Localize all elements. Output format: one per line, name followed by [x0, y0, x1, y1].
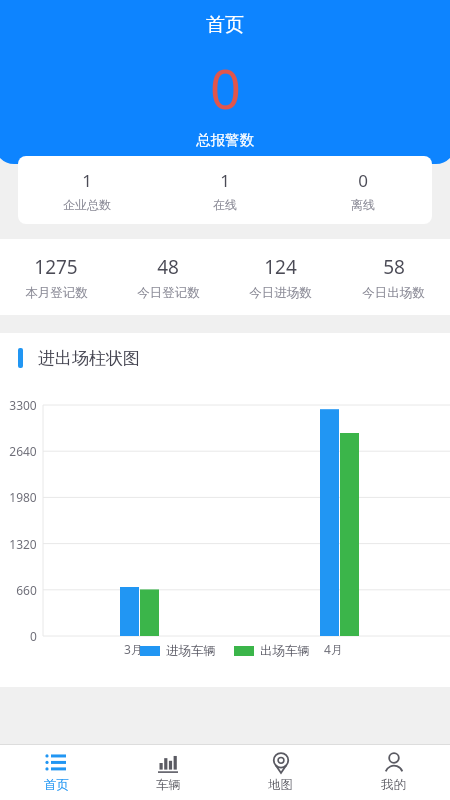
staticText: 车辆: [156, 777, 181, 793]
staticText: 离线: [351, 197, 375, 212]
staticText: 总报警数: [196, 131, 254, 149]
button[interactable]: 地图: [224, 752, 337, 793]
button[interactable]: 我的: [337, 752, 450, 793]
staticText: 进出场柱状图: [38, 348, 140, 369]
staticText: 首页: [44, 777, 69, 793]
button[interactable]: 58: [337, 254, 450, 301]
staticText: 出场车辆: [260, 643, 310, 659]
staticText: 首页: [206, 13, 244, 37]
staticText: 3月: [124, 641, 143, 657]
staticText: 今日登记数: [137, 285, 200, 301]
button[interactable]: 1275: [0, 239, 450, 315]
button[interactable]: 首页: [0, 752, 112, 793]
button[interactable]: 进场车辆: [140, 643, 216, 659]
staticText: 进场车辆: [166, 643, 216, 659]
staticText: 1: [82, 169, 92, 192]
staticText: 1275: [34, 254, 78, 280]
staticText: 企业总数: [63, 197, 111, 212]
staticText: 0: [30, 628, 37, 644]
button[interactable]: 1: [156, 169, 294, 212]
button[interactable]: 48: [112, 254, 224, 301]
staticText: 2640: [9, 443, 37, 459]
button[interactable]: 0: [294, 169, 432, 212]
staticText: 今日出场数: [362, 285, 425, 301]
staticText: 在线: [213, 197, 237, 212]
staticText: 48: [157, 254, 179, 280]
button[interactable]: 车辆: [112, 752, 224, 793]
staticText: 1320: [9, 536, 37, 552]
staticText: 4月: [324, 641, 343, 657]
staticText: 660: [16, 582, 37, 598]
staticText: 1: [220, 169, 230, 192]
button[interactable]: 1: [18, 169, 156, 212]
staticText: 1980: [9, 489, 37, 505]
staticText: 124: [264, 254, 297, 280]
staticText: 地图: [268, 777, 293, 793]
staticText: 3300: [9, 397, 37, 413]
button[interactable]: 1: [18, 156, 432, 224]
button[interactable]: 1275: [0, 254, 112, 301]
staticText: 0: [210, 51, 241, 125]
button[interactable]: 出场车辆: [234, 643, 310, 659]
button[interactable]: 124: [224, 254, 337, 301]
staticText: 0: [358, 169, 368, 192]
staticText: 本月登记数: [25, 285, 88, 301]
staticText: 今日进场数: [249, 285, 312, 301]
staticText: 58: [383, 254, 405, 280]
staticText: 我的: [381, 777, 406, 793]
